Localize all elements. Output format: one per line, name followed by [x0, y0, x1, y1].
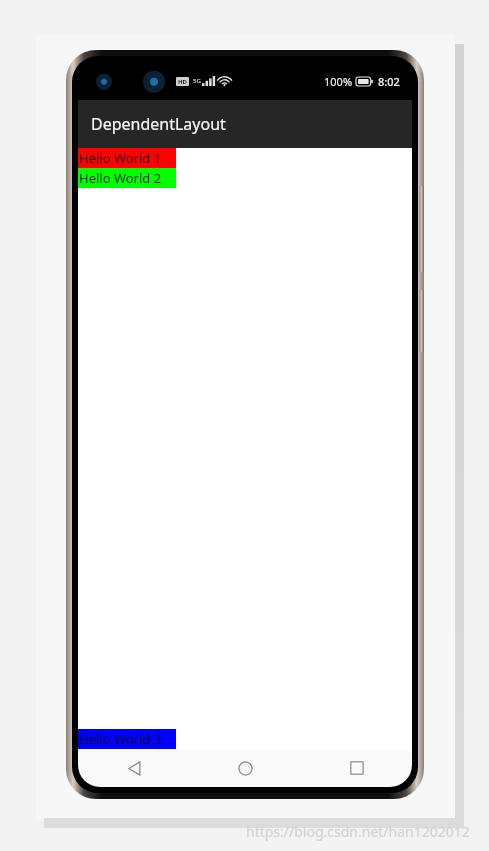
button[interactable]: Recents	[301, 749, 412, 787]
staticText: DependentLayout	[91, 113, 226, 135]
button[interactable]: Hello World 2	[78, 168, 176, 188]
button[interactable]: DependentLayout	[78, 100, 412, 148]
staticText: Hello World 2	[79, 169, 162, 187]
staticText: 8:02	[378, 74, 400, 89]
staticText: 5G	[193, 77, 201, 85]
button[interactable]: Home	[190, 749, 301, 787]
staticText: HD	[178, 78, 187, 86]
button[interactable]: Hello World 1	[78, 148, 176, 168]
staticText: https://blog.csdn.net/han1202012	[246, 822, 470, 841]
staticText: Hello World 1	[79, 149, 162, 167]
button[interactable]: Back	[78, 749, 190, 787]
staticText: 100%	[324, 74, 353, 89]
button[interactable]: Hello World 3	[78, 729, 176, 749]
staticText: Hello World 3	[79, 730, 162, 748]
